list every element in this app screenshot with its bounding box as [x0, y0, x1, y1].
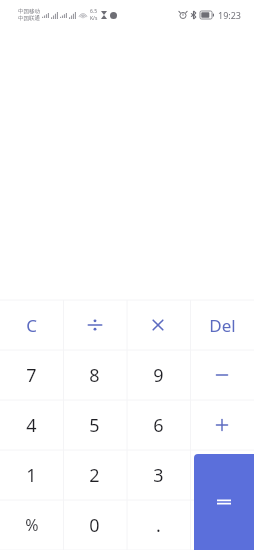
button[interactable]: Divide	[63, 300, 126, 350]
staticText: 2	[89, 463, 100, 488]
button[interactable]: Plus	[190, 400, 254, 450]
button[interactable]: 8	[63, 350, 126, 400]
button[interactable]: C	[0, 300, 63, 350]
other: Bluetooth	[191, 11, 196, 19]
button[interactable]: 4	[0, 400, 63, 450]
staticText: 9	[153, 363, 164, 388]
button[interactable]: 9	[126, 350, 190, 400]
staticText: 5	[89, 413, 100, 438]
button[interactable]: 2	[63, 450, 126, 500]
staticText: 6.5	[90, 8, 98, 15]
staticText: 中国联通	[18, 15, 40, 22]
button[interactable]: Del	[190, 300, 254, 350]
button[interactable]: Multiply	[126, 300, 190, 350]
staticText: 8	[89, 363, 100, 388]
staticText: %	[25, 514, 39, 536]
button[interactable]: %	[0, 500, 63, 550]
button[interactable]: .	[126, 500, 190, 550]
button[interactable]: 6	[126, 400, 190, 450]
staticText: .	[156, 513, 161, 538]
other: Battery 85 percent	[200, 11, 214, 19]
staticText: K/s	[90, 15, 98, 22]
staticText: 中国移动	[18, 8, 40, 15]
staticText: 19:23	[218, 9, 242, 21]
staticText: 1	[26, 463, 37, 488]
staticText: 7	[26, 363, 37, 388]
button[interactable]: 1	[0, 450, 63, 500]
button[interactable]: 5	[63, 400, 126, 450]
other: Equals	[217, 495, 231, 509]
staticText: 3	[153, 463, 164, 488]
button[interactable]: 3	[126, 450, 190, 500]
button[interactable]: 7	[0, 350, 63, 400]
staticText: 6	[153, 413, 164, 438]
other: Alarm	[179, 11, 187, 19]
button[interactable]: Equals	[194, 454, 254, 550]
staticText: 0	[89, 513, 100, 538]
staticText: C	[26, 314, 37, 337]
staticText: Del	[209, 314, 236, 337]
button[interactable]: 0	[63, 500, 126, 550]
button[interactable]: Minus	[190, 350, 254, 400]
staticText: 4	[26, 413, 37, 438]
